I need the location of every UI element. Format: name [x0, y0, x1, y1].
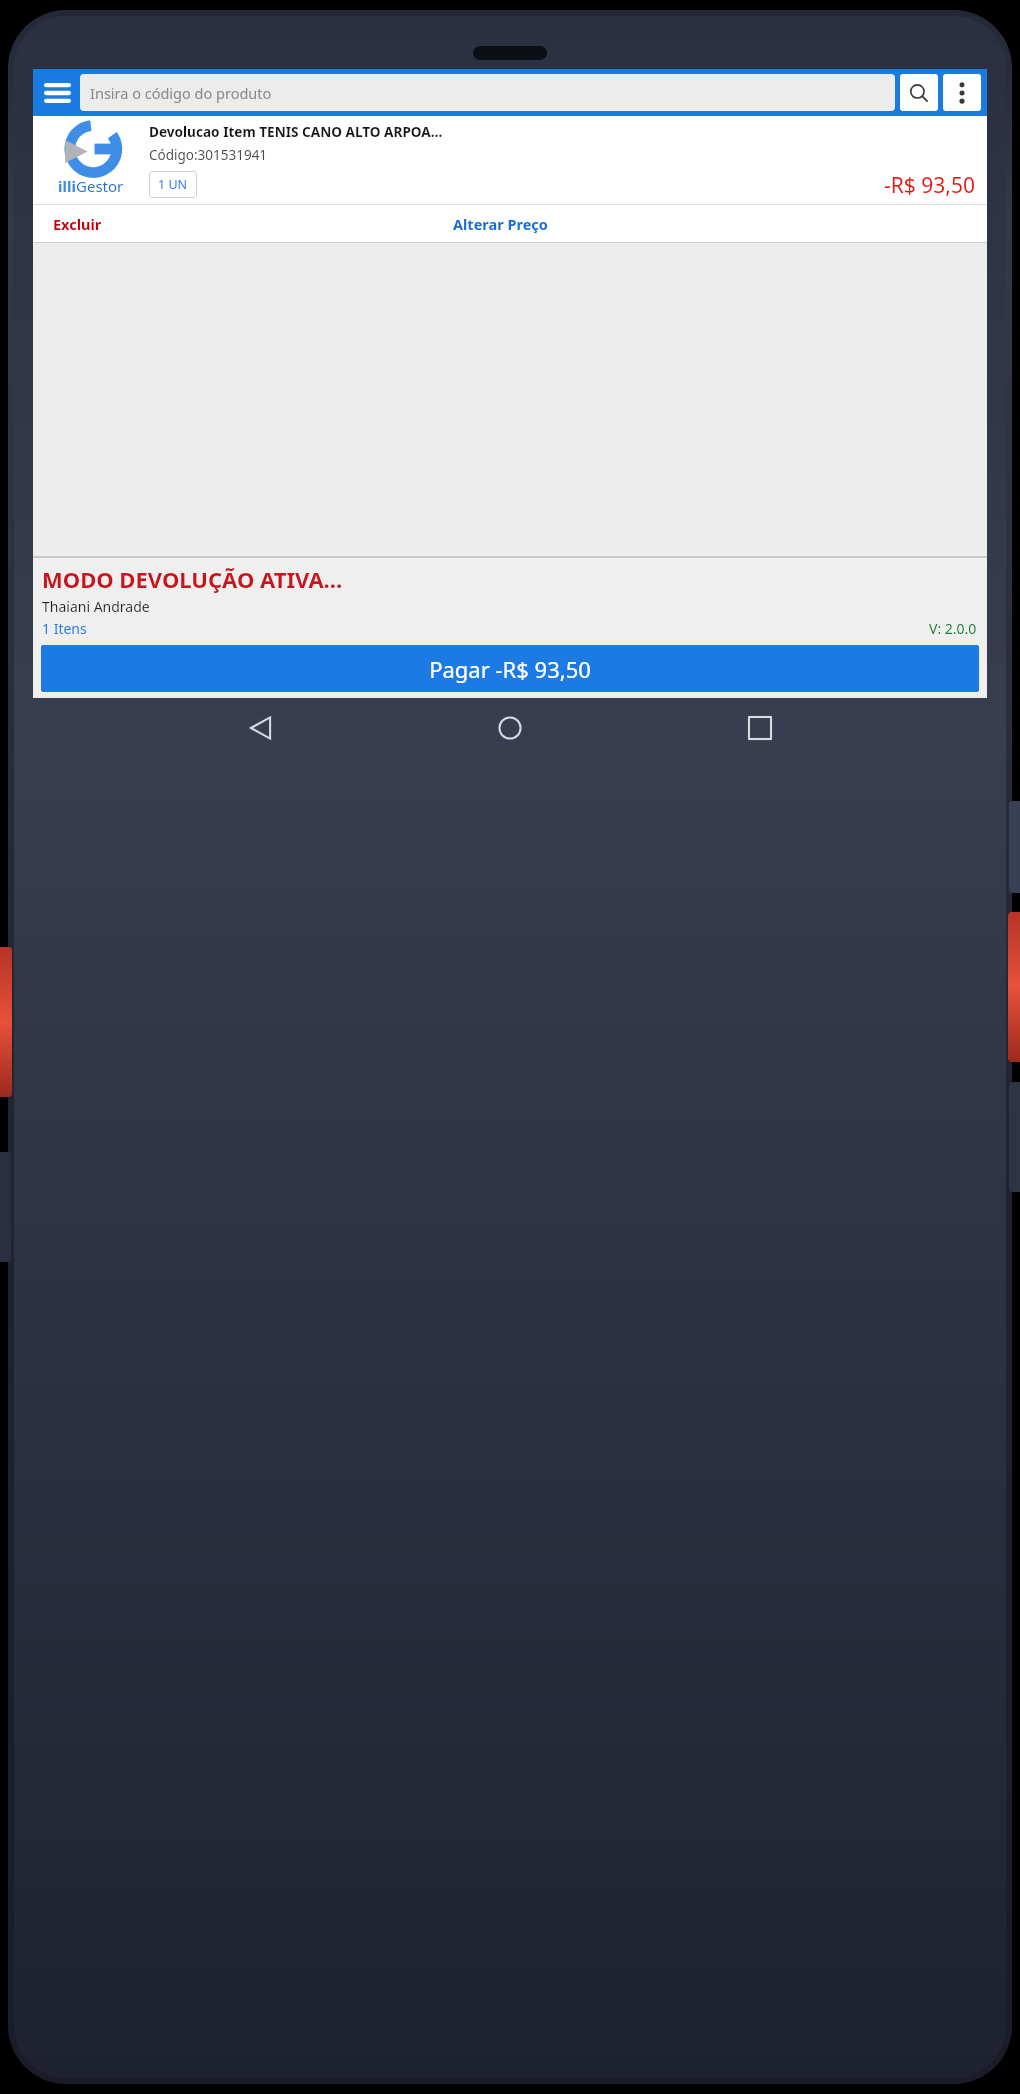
staticText: MODO DEVOLUÇÃO ATIVA…	[42, 564, 343, 594]
button[interactable]: Home	[488, 706, 532, 750]
staticText: Excluir	[53, 214, 102, 234]
button[interactable]: illi	[33, 116, 987, 204]
staticText: Devolucao Item TENIS CANO ALTO ARPOA…	[149, 122, 443, 141]
button[interactable]: Recents	[738, 706, 782, 750]
button[interactable]: 1 UN	[149, 171, 197, 198]
button[interactable]: Back	[239, 706, 283, 750]
staticText: Código:301531941	[149, 146, 268, 164]
staticText: Insira o código do produto	[90, 83, 272, 103]
staticText: Pagar -R$ 93,50	[429, 654, 591, 684]
staticText: V: 2.0.0	[929, 619, 977, 638]
button[interactable]: More options	[943, 74, 981, 111]
staticText: 1 Itens	[42, 619, 87, 638]
button[interactable]: Pagar -R$ 93,50	[41, 645, 979, 692]
button[interactable]: Insira o código do produto	[80, 74, 895, 111]
button[interactable]: Menu	[37, 71, 77, 115]
staticText: 1 UN	[158, 176, 188, 193]
staticText: illi	[58, 176, 76, 196]
staticText: Alterar Preço	[453, 214, 548, 234]
button[interactable]: Search	[900, 74, 938, 111]
button[interactable]: Excluir	[33, 205, 453, 242]
staticText: Thaiani Andrade	[42, 597, 150, 616]
staticText: -R$ 93,50	[884, 171, 975, 198]
button[interactable]: Alterar Preço	[453, 205, 987, 242]
staticText: Gestor	[76, 176, 124, 196]
